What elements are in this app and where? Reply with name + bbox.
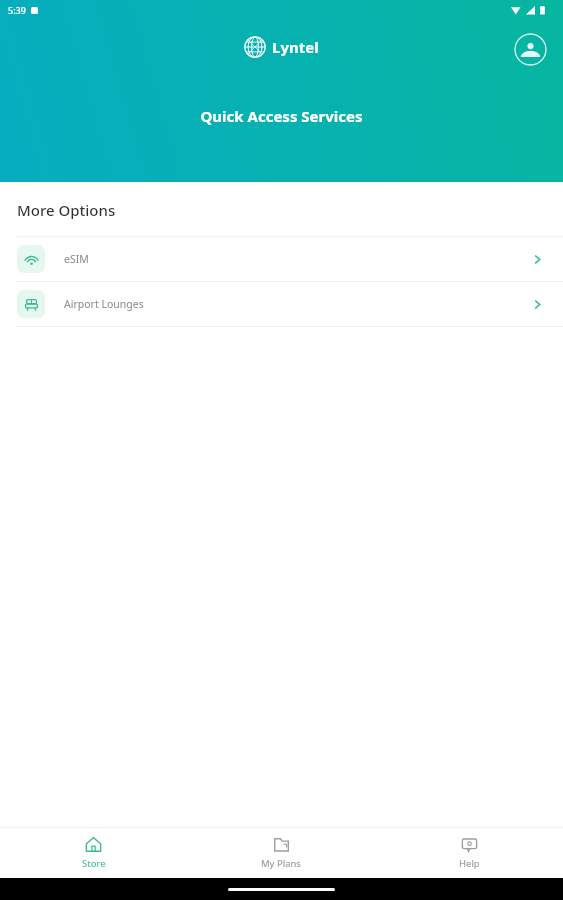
staticText: Store — [82, 857, 106, 870]
staticText: eSIM — [64, 252, 89, 266]
button[interactable]: Account — [514, 33, 547, 66]
button[interactable]: Store — [0, 828, 187, 878]
staticText: 5:39 — [8, 4, 26, 16]
staticText: Airport Lounges — [64, 297, 144, 311]
button[interactable]: Help — [375, 828, 563, 878]
staticText: Lyntel — [272, 37, 319, 57]
staticText: My Plans — [261, 857, 301, 870]
button[interactable]: eSIM — [0, 237, 563, 281]
staticText: More Options — [17, 200, 116, 220]
staticText: Quick Access Services — [200, 106, 363, 126]
staticText: Help — [459, 857, 480, 870]
button[interactable]: My Plans — [187, 828, 375, 878]
button[interactable]: Airport Lounges — [0, 282, 563, 326]
